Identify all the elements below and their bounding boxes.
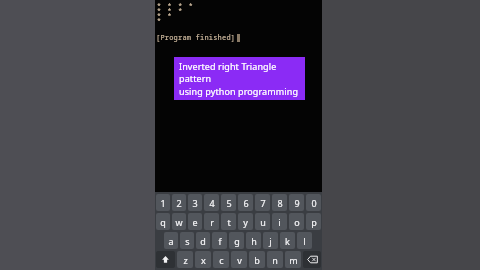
staticText: 4 <box>209 197 215 209</box>
button[interactable]: i <box>272 213 287 230</box>
button[interactable]: 1 <box>156 194 170 211</box>
staticText: 9 <box>294 197 300 209</box>
button[interactable]: o <box>289 213 304 230</box>
button[interactable]: w <box>172 213 186 230</box>
staticText: 7 <box>260 197 266 209</box>
staticText: b <box>254 254 260 266</box>
staticText: 8 <box>277 197 283 209</box>
button[interactable]: v <box>231 251 247 268</box>
button[interactable]: 4 <box>204 194 219 211</box>
staticText: q <box>160 216 166 228</box>
staticText: 2 <box>176 197 182 209</box>
button[interactable]: z <box>177 251 193 268</box>
button[interactable]: j <box>263 232 278 249</box>
button[interactable]: 2 <box>172 194 186 211</box>
button[interactable]: q <box>156 213 170 230</box>
staticText: h <box>251 235 257 247</box>
button[interactable]: 3 <box>188 194 202 211</box>
staticText: Inverted right Triangle pattern <box>179 60 300 84</box>
button[interactable]: b <box>249 251 265 268</box>
button[interactable]: e <box>188 213 202 230</box>
staticText: e <box>192 216 198 228</box>
staticText: [Program finished] <box>156 33 236 43</box>
button[interactable]: h <box>246 232 261 249</box>
staticText: y <box>243 216 248 228</box>
staticText: w <box>175 216 183 228</box>
staticText: 6 <box>243 197 249 209</box>
staticText: * * <box>157 11 173 16</box>
button[interactable]: 6 <box>238 194 253 211</box>
button[interactable]: c <box>213 251 229 268</box>
staticText: * * * * <box>157 1 195 6</box>
staticText: * * * <box>157 6 184 11</box>
button[interactable]: m <box>285 251 301 268</box>
button[interactable]: t <box>221 213 236 230</box>
button[interactable]: u <box>255 213 270 230</box>
staticText: n <box>272 254 278 266</box>
staticText: p <box>311 216 317 228</box>
staticText: * <box>157 16 163 21</box>
staticText: 0 <box>311 197 317 209</box>
button[interactable]: l <box>297 232 312 249</box>
staticText: c <box>219 254 224 266</box>
staticText: s <box>185 235 190 247</box>
button[interactable]: s <box>180 232 194 249</box>
staticText: l <box>303 235 306 247</box>
button[interactable]: Shift <box>156 251 175 268</box>
button[interactable]: 7 <box>255 194 270 211</box>
staticText: g <box>234 235 240 247</box>
staticText: u <box>260 216 266 228</box>
staticText: z <box>183 254 188 266</box>
staticText: t <box>227 216 231 228</box>
button[interactable]: 8 <box>272 194 287 211</box>
staticText: 5 <box>226 197 232 209</box>
button[interactable]: r <box>204 213 219 230</box>
staticText: o <box>294 216 300 228</box>
button[interactable]: p <box>306 213 321 230</box>
button[interactable]: d <box>196 232 210 249</box>
button[interactable]: 5 <box>221 194 236 211</box>
button[interactable]: f <box>212 232 227 249</box>
staticText: 1 <box>160 197 166 209</box>
button[interactable]: y <box>238 213 253 230</box>
staticText: j <box>269 235 272 247</box>
button[interactable]: a <box>164 232 178 249</box>
staticText: x <box>201 254 206 266</box>
staticText: d <box>200 235 206 247</box>
button[interactable]: 0 <box>306 194 321 211</box>
button[interactable]: Backspace <box>303 251 321 268</box>
button[interactable]: 9 <box>289 194 304 211</box>
staticText: r <box>210 216 214 228</box>
staticText: k <box>285 235 290 247</box>
button[interactable]: Inverted right Triangle pattern <box>174 57 305 100</box>
button[interactable]: g <box>229 232 244 249</box>
button[interactable]: x <box>195 251 211 268</box>
staticText: f <box>218 235 222 247</box>
staticText: i <box>278 216 281 228</box>
staticText: m <box>289 254 298 266</box>
staticText: using python programming <box>179 85 299 97</box>
button[interactable]: k <box>280 232 295 249</box>
staticText: 3 <box>192 197 198 209</box>
button[interactable]: n <box>267 251 283 268</box>
staticText: v <box>237 254 242 266</box>
staticText: a <box>168 235 174 247</box>
